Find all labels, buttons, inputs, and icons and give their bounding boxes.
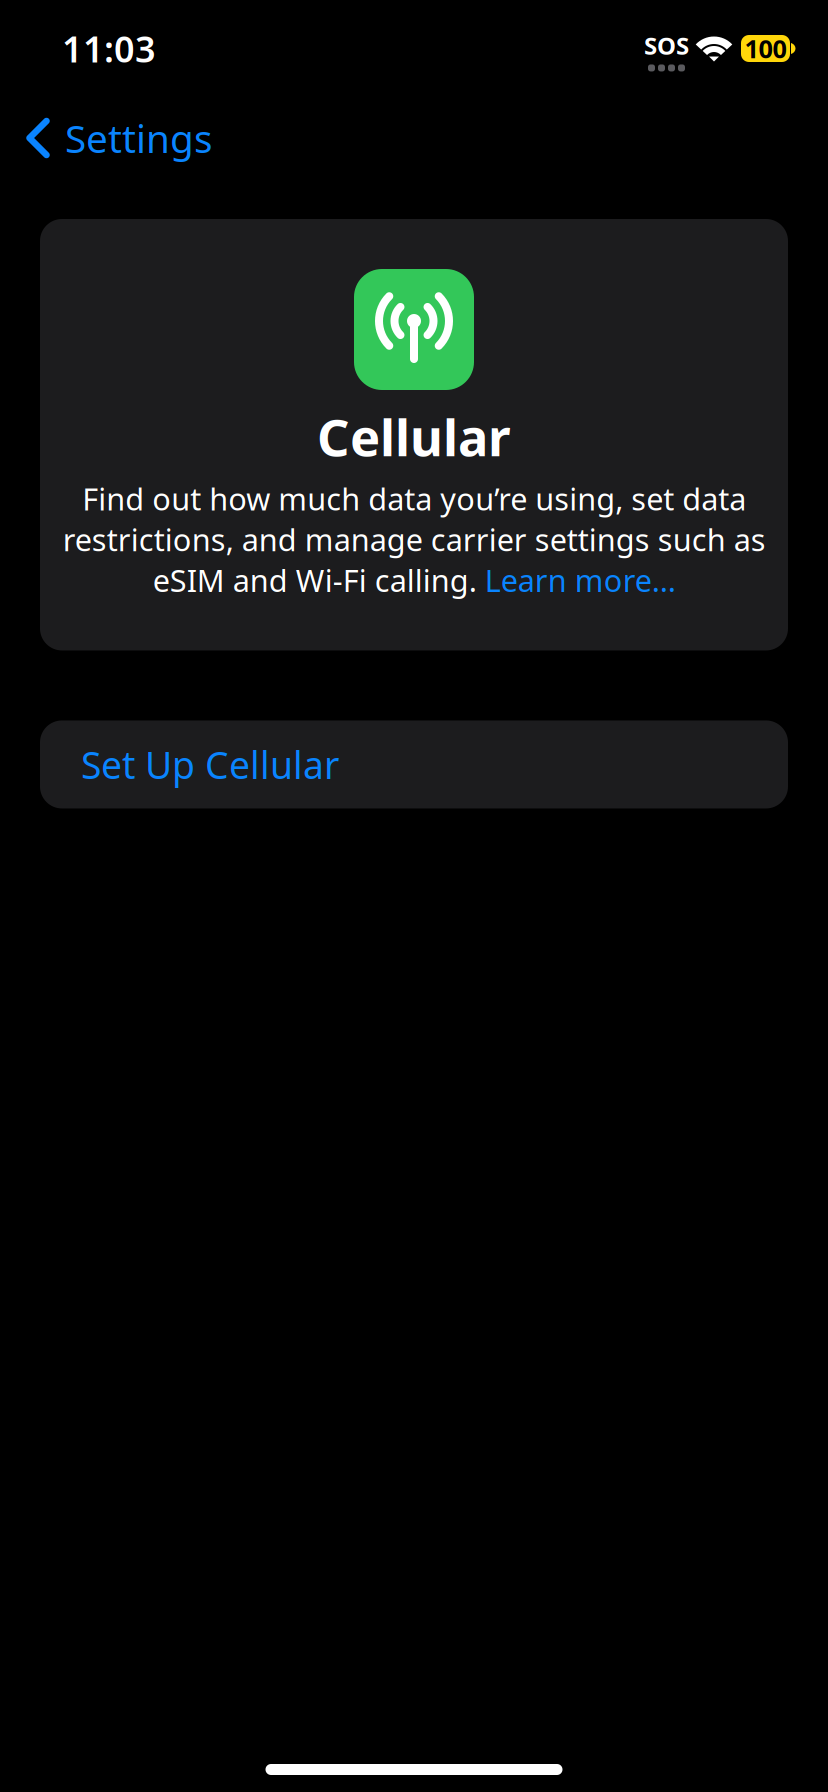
staticText: 100 bbox=[744, 32, 786, 65]
button[interactable]: Set Up Cellular bbox=[40, 720, 788, 808]
button[interactable]: Back to Settings bbox=[0, 94, 233, 182]
staticText: Find out how much data you’re using, set… bbox=[62, 478, 765, 600]
staticText: Cellular bbox=[317, 403, 511, 470]
staticText: Set Up Cellular bbox=[81, 740, 339, 789]
staticText: SOS bbox=[644, 30, 689, 61]
staticText: 11:03 bbox=[62, 25, 156, 72]
staticText: Settings bbox=[65, 112, 213, 164]
